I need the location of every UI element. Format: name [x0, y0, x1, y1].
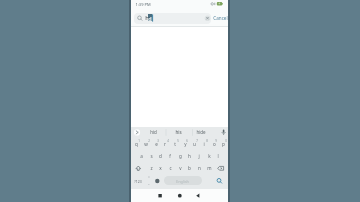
- button[interactable]: n: [187, 162, 211, 174]
- staticText: his: [175, 129, 182, 135]
- staticText: 4: [167, 139, 169, 143]
- staticText: 1:39 PM: [135, 2, 151, 7]
- staticText: c: [169, 165, 172, 171]
- button[interactable]: b: [177, 162, 201, 174]
- staticText: k: [208, 153, 211, 159]
- button[interactable]: z: [139, 162, 163, 174]
- button[interactable]: i: [192, 138, 216, 150]
- staticText: 0: [225, 139, 227, 143]
- staticText: m: [207, 165, 212, 171]
- staticText: Cancel: [213, 15, 228, 21]
- staticText: t: [174, 141, 176, 147]
- staticText: °: [148, 176, 150, 180]
- staticText: b: [188, 165, 191, 171]
- staticText: p: [222, 141, 225, 147]
- button[interactable]: k: [197, 150, 221, 162]
- staticText: i: [203, 141, 205, 147]
- button[interactable]: h: [177, 150, 201, 162]
- staticText: x: [159, 165, 162, 171]
- staticText: hide: [196, 129, 206, 135]
- button[interactable]: p: [211, 138, 235, 150]
- staticText: ,: [148, 180, 150, 185]
- staticText: q: [135, 141, 138, 147]
- staticText: a: [140, 153, 143, 159]
- staticText: e: [155, 141, 158, 147]
- button[interactable]: v: [168, 162, 192, 174]
- staticText: hid: [150, 129, 157, 135]
- staticText: j: [198, 153, 200, 159]
- button[interactable]: hide: [189, 126, 213, 138]
- button[interactable]: x: [148, 162, 172, 174]
- staticText: v: [179, 165, 182, 171]
- staticText: h: [188, 153, 191, 159]
- button[interactable]: o: [202, 138, 226, 150]
- button[interactable]: l: [206, 150, 230, 162]
- button[interactable]: d: [148, 150, 172, 162]
- button[interactable]: Cancel: [208, 12, 232, 24]
- staticText: d: [159, 153, 162, 159]
- staticText: u: [193, 141, 196, 147]
- button[interactable]: his: [166, 126, 190, 138]
- staticText: l: [217, 153, 219, 159]
- button[interactable]: j: [187, 150, 211, 162]
- button[interactable]: m: [197, 162, 221, 174]
- button[interactable]: c: [158, 162, 182, 174]
- staticText: y: [184, 141, 187, 147]
- staticText: s: [150, 153, 153, 159]
- button[interactable]: g: [168, 150, 192, 162]
- staticText: 5: [177, 139, 179, 143]
- staticText: h: [145, 14, 149, 22]
- staticText: 3: [157, 139, 159, 143]
- staticText: r: [164, 141, 166, 147]
- staticText: English: [176, 179, 189, 184]
- staticText: w: [144, 141, 148, 147]
- staticText: 1: [138, 139, 140, 143]
- button[interactable]: e: [144, 138, 168, 150]
- button[interactable]: w: [134, 138, 158, 150]
- staticText: 9: [215, 139, 217, 143]
- staticText: ?123: [134, 179, 142, 184]
- button[interactable]: f: [158, 150, 182, 162]
- button[interactable]: [164, 176, 202, 185]
- button[interactable]: q: [124, 138, 148, 150]
- staticText: f: [169, 153, 171, 159]
- button[interactable]: a: [129, 150, 153, 162]
- button[interactable]: s: [139, 150, 163, 162]
- staticText: 7: [196, 139, 198, 143]
- button[interactable]: [131, 189, 228, 202]
- staticText: 8: [206, 139, 208, 143]
- button[interactable]: t: [163, 138, 187, 150]
- button[interactable]: y: [173, 138, 197, 150]
- staticText: z: [150, 165, 153, 171]
- button[interactable]: hid: [141, 126, 165, 138]
- staticText: g: [179, 153, 182, 159]
- staticText: 6: [186, 139, 188, 143]
- staticText: o: [213, 141, 216, 147]
- staticText: 2: [148, 139, 150, 143]
- staticText: d: [148, 15, 152, 22]
- staticText: n: [198, 165, 201, 171]
- button[interactable]: u: [182, 138, 206, 150]
- button[interactable]: r: [153, 138, 177, 150]
- button[interactable]: ?123: [126, 175, 150, 187]
- button[interactable]: [134, 13, 211, 24]
